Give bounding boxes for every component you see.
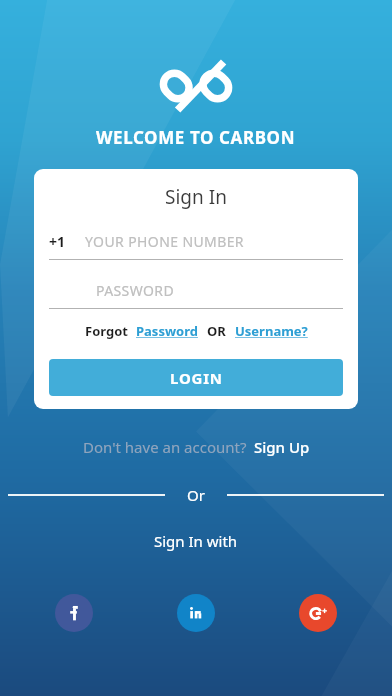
staticText: +1 — [49, 232, 66, 251]
staticText: Sign In with — [154, 531, 238, 551]
staticText: OR — [207, 322, 226, 340]
button[interactable]: Sign Up — [254, 437, 310, 457]
staticText: Sign In — [165, 184, 227, 210]
staticText: PASSWORD — [96, 281, 175, 300]
staticText: Password — [136, 322, 198, 340]
button[interactable]: Password — [136, 322, 198, 340]
staticText: Username? — [235, 322, 308, 340]
staticText: Don't have an account? — [83, 437, 247, 457]
staticText: Forgot — [85, 322, 128, 340]
button[interactable]: Sign in with Google Plus — [299, 594, 337, 632]
button[interactable]: Sign in with LinkedIn — [177, 594, 215, 632]
staticText: LOGIN — [170, 368, 223, 388]
staticText: WELCOME TO CARBON — [96, 126, 296, 149]
button[interactable]: LOGIN — [49, 359, 343, 396]
button[interactable]: Username? — [235, 322, 308, 340]
staticText: YOUR PHONE NUMBER — [85, 232, 244, 251]
staticText: Sign Up — [254, 437, 310, 457]
button[interactable]: Sign in with Facebook — [55, 594, 93, 632]
staticText: Or — [187, 485, 205, 505]
